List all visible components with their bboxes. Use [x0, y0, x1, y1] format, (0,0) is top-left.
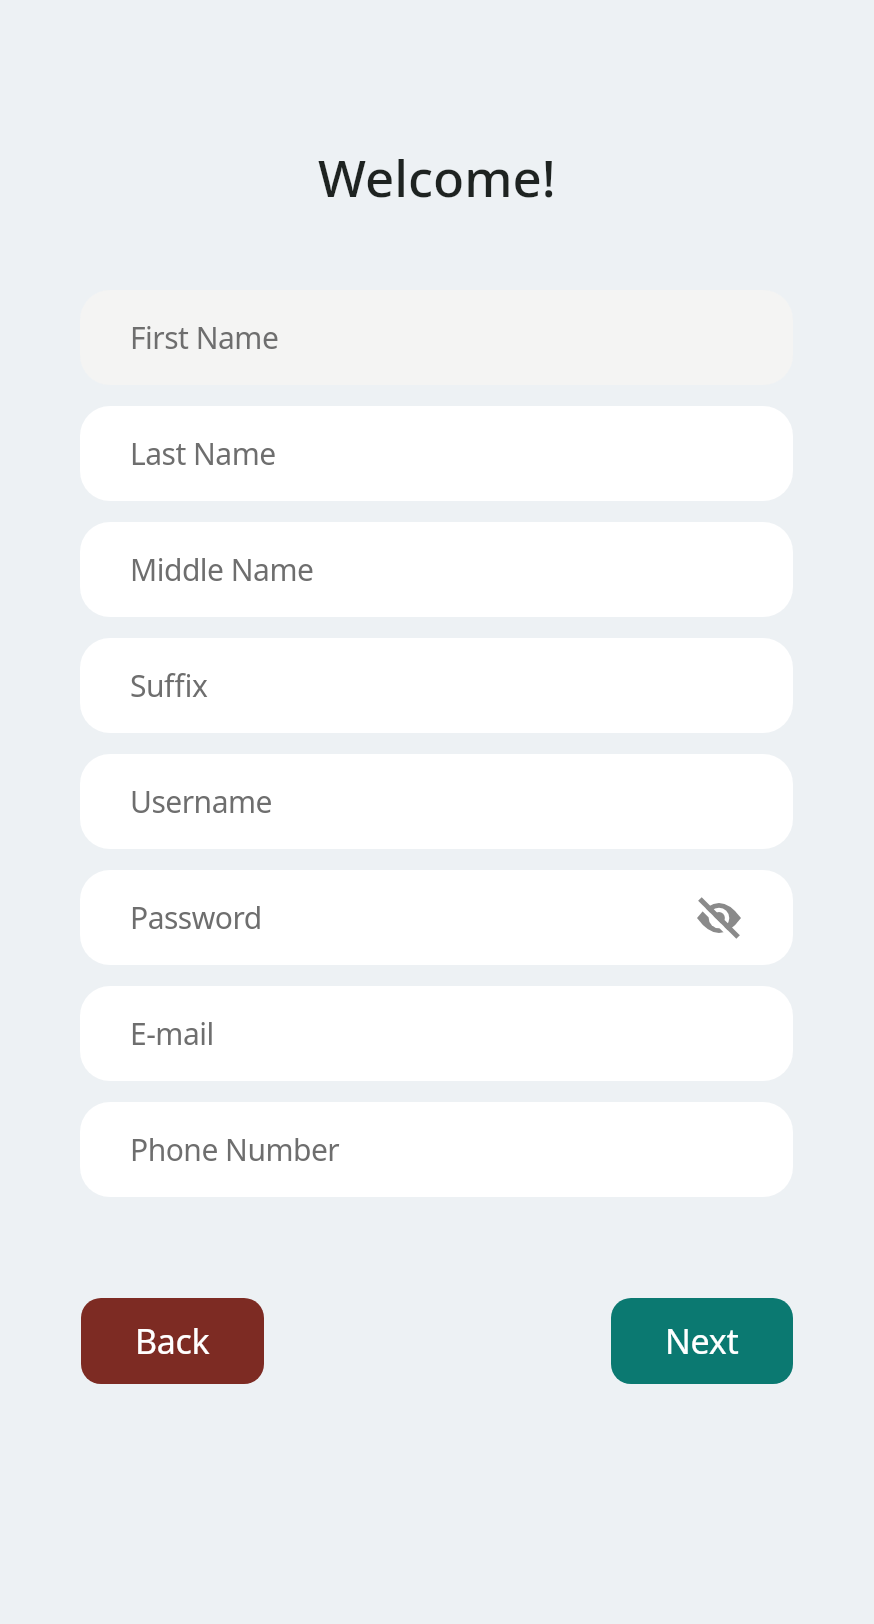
staticText: E-mail	[130, 1013, 214, 1054]
staticText: Last Name	[130, 433, 276, 474]
staticText: Suffix	[130, 665, 208, 706]
staticText: Password	[130, 897, 262, 938]
staticText: Username	[130, 781, 272, 822]
staticText: Middle Name	[130, 549, 314, 590]
staticText: Phone Number	[130, 1129, 340, 1170]
staticText: Back	[135, 1318, 210, 1364]
staticText: Next	[665, 1318, 739, 1364]
staticText: Welcome!	[318, 142, 556, 211]
staticText: First Name	[130, 317, 279, 358]
